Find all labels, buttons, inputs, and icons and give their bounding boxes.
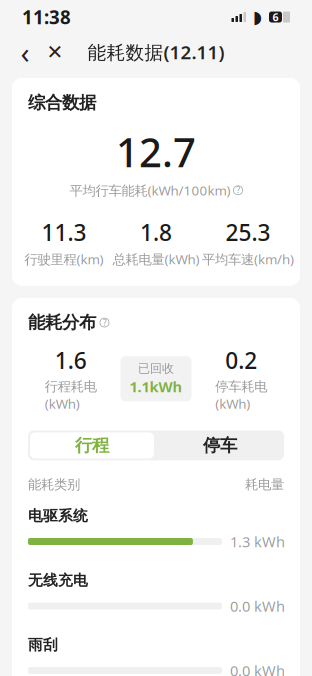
button[interactable]: Close	[40, 35, 70, 69]
staticText: 停车耗电(kWh)	[215, 378, 267, 412]
staticText: 0.0 kWh	[230, 596, 285, 616]
staticText: 平均车速(km/h)	[202, 250, 294, 268]
staticText: ✕	[46, 41, 63, 63]
staticText: 行驶里程(km)	[24, 250, 103, 268]
staticText: 耗电量	[245, 476, 284, 493]
staticText: 能耗分布	[28, 312, 96, 333]
staticText: 已回收	[138, 361, 174, 376]
staticText: 平均行车能耗(kWh/100km)	[69, 181, 230, 199]
staticText: 11:38	[22, 5, 71, 29]
staticText: 综合数据	[28, 92, 96, 113]
staticText: 无线充电	[28, 571, 88, 589]
staticText: 停车	[203, 435, 237, 456]
staticText: 能耗数据(12.11)	[87, 40, 224, 64]
staticText: 总耗电量(kWh)	[112, 250, 199, 268]
staticText: 12.7	[116, 125, 196, 178]
staticText: 能耗类别	[28, 476, 80, 493]
staticText: 0.0 kWh	[230, 661, 285, 676]
staticText: 行程	[75, 435, 109, 456]
staticText: 1.6	[55, 345, 87, 375]
staticText: 行程耗电(kWh)	[45, 378, 97, 412]
staticText: 6	[272, 10, 278, 24]
staticText: 1.8	[140, 217, 172, 247]
staticText: 25.3	[225, 217, 270, 247]
button[interactable]: 行程	[28, 430, 156, 460]
staticText: ◗	[253, 7, 262, 27]
staticText: 1.1kWh	[129, 377, 182, 396]
button[interactable]: Back	[10, 35, 40, 69]
staticText: ?	[236, 185, 239, 195]
button[interactable]: 停车	[156, 430, 284, 460]
staticText: ‹	[20, 32, 29, 71]
staticText: ?	[103, 317, 106, 328]
staticText: 0.2	[225, 345, 257, 375]
staticText: 1.3 kWh	[230, 532, 285, 551]
staticText: 电驱系统	[28, 507, 88, 525]
staticText: 11.3	[41, 217, 86, 247]
staticText: 雨刮	[28, 636, 58, 654]
